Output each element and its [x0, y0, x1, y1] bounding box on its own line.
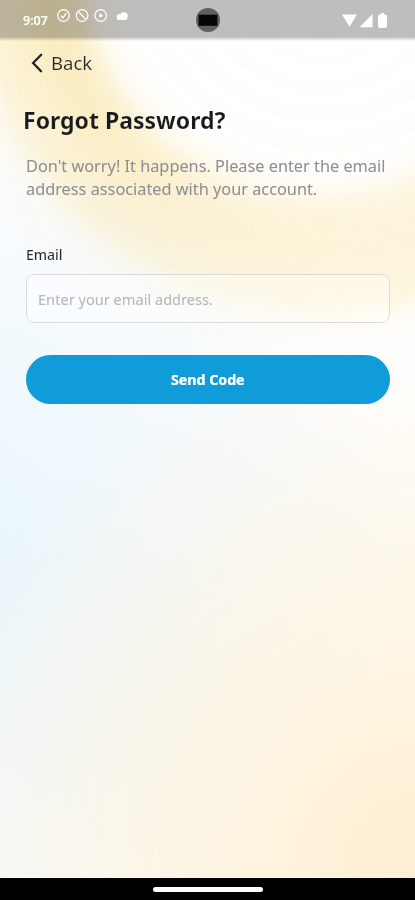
- staticText: 9:07: [23, 12, 48, 29]
- staticText: Send Code: [171, 370, 245, 389]
- button[interactable]: Send Code: [26, 355, 390, 404]
- button[interactable]: Enter your email address.: [26, 274, 390, 323]
- staticText: Don't worry! It happens. Please enter th…: [26, 155, 392, 200]
- button[interactable]: Back: [26, 45, 97, 80]
- staticText: Email: [26, 245, 63, 264]
- staticText: Enter your email address.: [38, 289, 213, 309]
- staticText: Back: [51, 50, 93, 75]
- staticText: Forgot Password?: [23, 104, 226, 135]
